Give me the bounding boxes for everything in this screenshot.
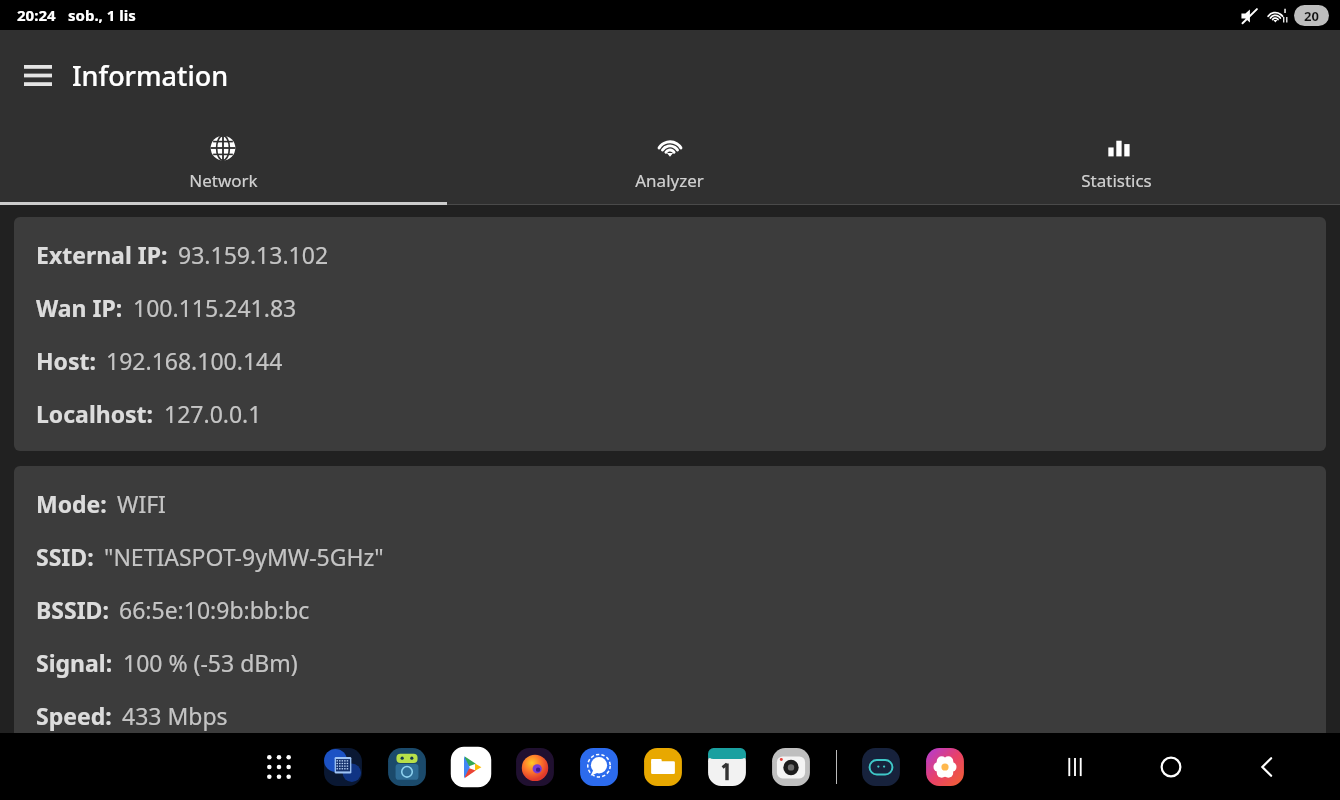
button[interactable]: Package installer: [384, 744, 430, 790]
button[interactable]: Camera: [768, 744, 814, 790]
button[interactable]: Analyzer: [446, 120, 893, 192]
staticText: Mode:: [36, 488, 107, 519]
staticText: Speed:: [36, 700, 112, 731]
button[interactable]: Home: [1148, 744, 1194, 790]
staticText: Signal:: [36, 647, 113, 678]
staticText: 100.115.241.83: [133, 292, 297, 323]
button[interactable]: This PC: [320, 744, 366, 790]
staticText: 127.0.0.1: [164, 398, 262, 429]
button[interactable]: Network: [0, 120, 446, 192]
staticText: BSSID:: [36, 594, 109, 625]
button[interactable]: Mode:: [14, 466, 1326, 753]
staticText: External IP:: [36, 239, 168, 270]
button[interactable]: Apps: [256, 744, 302, 790]
button[interactable]: Recent apps: [1052, 744, 1098, 790]
staticText: 192.168.100.144: [106, 345, 283, 376]
button[interactable]: Calendar: [704, 744, 750, 790]
staticText: Network: [189, 169, 258, 192]
staticText: 100 % (-53 dBm): [123, 647, 298, 678]
button[interactable]: Gallery: [922, 744, 968, 790]
staticText: Analyzer: [635, 169, 704, 192]
staticText: "NETIASPOT-9yMW-5GHz": [104, 541, 384, 572]
staticText: Wan IP:: [36, 292, 123, 323]
button[interactable]: External IP:: [14, 217, 1326, 451]
staticText: 20:24: [17, 5, 56, 25]
staticText: SSID:: [36, 541, 94, 572]
staticText: Localhost:: [36, 398, 154, 429]
button[interactable]: Back: [1244, 744, 1290, 790]
button[interactable]: Signal: [576, 744, 622, 790]
staticText: WIFI: [117, 488, 166, 519]
button[interactable]: Firefox: [512, 744, 558, 790]
button[interactable]: Open navigation menu: [12, 49, 64, 101]
staticText: sob., 1 lis: [68, 5, 136, 25]
button[interactable]: Samsung Cloud: [858, 744, 904, 790]
button[interactable]: Statistics: [893, 120, 1340, 192]
staticText: Statistics: [1081, 169, 1152, 192]
button[interactable]: Play Store: [448, 744, 494, 790]
staticText: 93.159.13.102: [178, 239, 329, 270]
staticText: 433 Mbps: [122, 700, 228, 731]
button[interactable]: My Files: [640, 744, 686, 790]
staticText: Information: [72, 57, 229, 94]
staticText: Host:: [36, 345, 96, 376]
staticText: 66:5e:10:9b:bb:bc: [119, 594, 310, 625]
staticText: 20: [1304, 7, 1319, 25]
